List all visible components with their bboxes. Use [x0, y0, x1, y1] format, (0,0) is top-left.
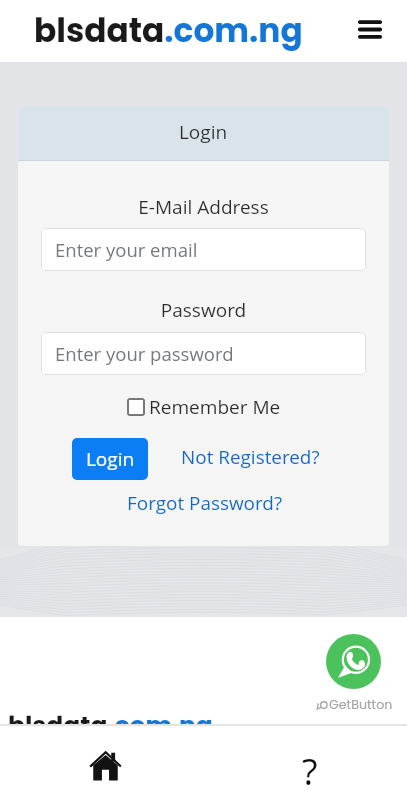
button[interactable]: Not Registered? — [181, 444, 320, 470]
staticText: E-Mail Address — [18, 194, 389, 220]
button[interactable]: Enter your password — [41, 332, 366, 375]
staticText: Password — [18, 297, 389, 323]
button[interactable]: Forgot Password? — [127, 490, 283, 516]
staticText: GetButton — [329, 696, 393, 714]
button[interactable]: Chat on WhatsApp — [326, 634, 381, 689]
staticText: Remember Me — [149, 394, 281, 420]
button[interactable]: Home — [0, 726, 203, 800]
staticText: ? — [302, 747, 318, 796]
staticText: Forgot Password? — [127, 490, 283, 516]
button[interactable]: Remember Me — [127, 394, 281, 420]
staticText: Enter your email — [55, 237, 198, 262]
staticText: Enter your password — [55, 341, 234, 366]
button[interactable]: Enter your email — [41, 228, 366, 271]
staticText: Login — [179, 119, 228, 145]
button[interactable]: blsdata.com.ng — [34, 8, 303, 54]
staticText: Not Registered? — [181, 444, 320, 470]
button[interactable]: Login — [72, 438, 148, 480]
button[interactable]: Help — [203, 726, 407, 800]
staticText: Login — [86, 446, 135, 472]
button[interactable]: Open menu — [352, 11, 388, 47]
staticText: blsdata.com.ng — [8, 708, 213, 743]
